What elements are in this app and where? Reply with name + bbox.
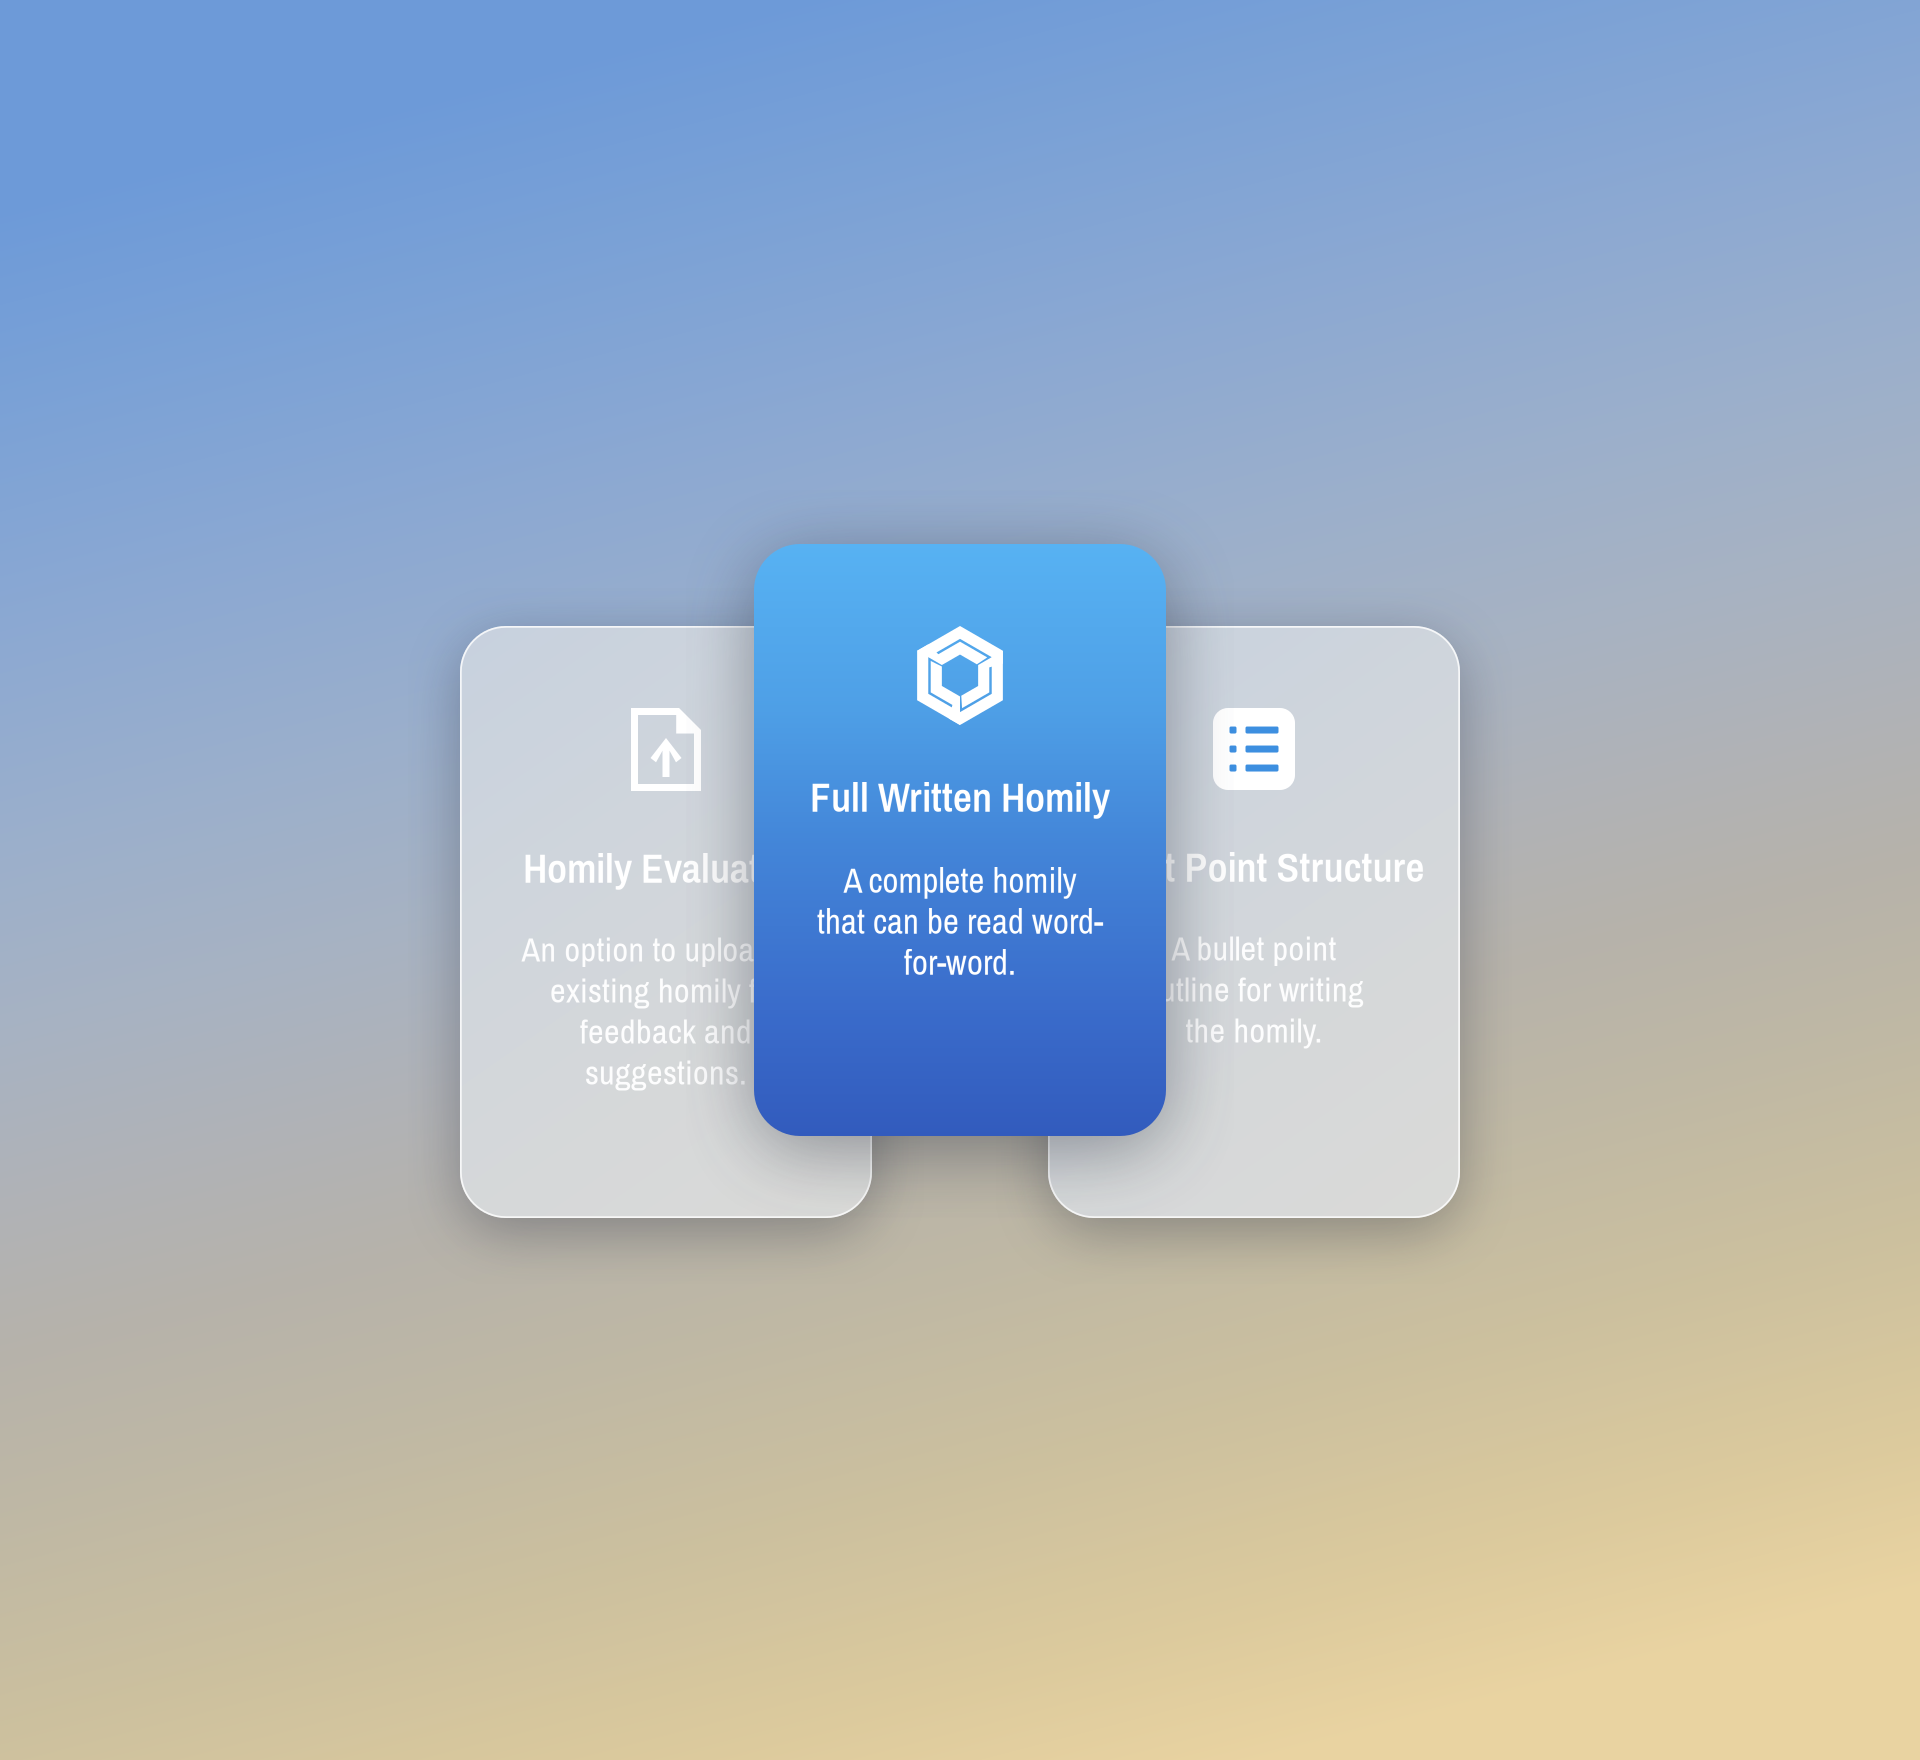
button[interactable]: Full Written Homily — [754, 544, 1166, 1136]
staticText: the homily. — [1185, 1007, 1322, 1053]
staticText: outline for writing — [1144, 966, 1364, 1012]
staticText: An option to upload an — [521, 926, 810, 972]
staticText: Full Written Homily — [810, 769, 1110, 825]
staticText: existing homily for — [550, 967, 782, 1013]
staticText: A complete homily — [843, 857, 1076, 903]
button[interactable]: Bullet Point Structure — [1048, 626, 1460, 1218]
staticText: suggestions. — [585, 1049, 747, 1095]
staticText: A bullet point — [1171, 925, 1336, 971]
staticText: that can be read word- — [817, 898, 1103, 944]
staticText: Homily Evaluation — [523, 840, 809, 896]
staticText: Bullet Point Structure — [1083, 839, 1424, 895]
staticText: feedback and — [580, 1008, 752, 1054]
button[interactable]: Homily Evaluation — [460, 626, 872, 1218]
staticText: for-word. — [904, 939, 1016, 985]
